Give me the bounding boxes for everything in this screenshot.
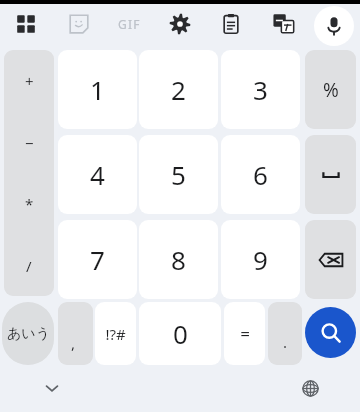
button[interactable]: Translate <box>262 4 306 44</box>
button[interactable]: 6 <box>221 135 300 214</box>
button[interactable]: 4 <box>58 135 137 214</box>
button[interactable]: Backspace <box>305 220 356 299</box>
staticText: 2 <box>171 72 186 107</box>
button[interactable]: !?# <box>95 302 136 365</box>
button[interactable]: Voice input <box>314 6 354 46</box>
staticText: 9 <box>253 242 268 277</box>
button[interactable]: , <box>58 302 93 365</box>
staticText: 8 <box>171 242 186 277</box>
button[interactable]: 0 <box>139 302 221 365</box>
button[interactable]: あいう <box>2 302 54 365</box>
button[interactable]: . <box>268 302 302 365</box>
button[interactable]: Space <box>305 135 356 214</box>
button[interactable]: Hide keyboard <box>32 368 72 408</box>
button[interactable]: * <box>4 173 54 235</box>
button[interactable]: 3 <box>221 50 300 129</box>
button[interactable]: % <box>305 50 356 129</box>
button[interactable]: Apps <box>4 4 48 44</box>
staticText: , <box>71 333 76 353</box>
button[interactable]: Stickers <box>57 4 101 44</box>
button[interactable]: 9 <box>221 220 300 299</box>
staticText: . <box>283 332 288 352</box>
staticText: 3 <box>253 72 268 107</box>
button[interactable]: 1 <box>58 50 137 129</box>
staticText: 4 <box>90 157 105 192</box>
button[interactable]: Change language <box>290 368 330 408</box>
button[interactable]: + <box>4 50 54 112</box>
button[interactable]: 8 <box>139 220 218 299</box>
button[interactable]: GIF <box>107 4 151 44</box>
staticText: GIF <box>118 16 141 32</box>
button[interactable]: 7 <box>58 220 137 299</box>
staticText: % <box>323 77 339 103</box>
button[interactable]: − <box>4 112 54 174</box>
button[interactable]: Search <box>305 307 356 358</box>
staticText: !?# <box>105 324 126 344</box>
staticText: 1 <box>90 72 105 107</box>
staticText: * <box>25 194 34 214</box>
staticText: 6 <box>253 157 268 192</box>
button[interactable]: 2 <box>139 50 218 129</box>
staticText: 0 <box>173 316 188 351</box>
button[interactable]: / <box>4 235 54 296</box>
staticText: 5 <box>171 157 186 192</box>
staticText: あいう <box>7 325 50 343</box>
staticText: + <box>25 71 34 91</box>
staticText: − <box>25 133 34 153</box>
staticText: = <box>240 322 250 345</box>
button[interactable]: Settings <box>158 4 202 44</box>
button[interactable]: 5 <box>139 135 218 214</box>
staticText: / <box>26 256 32 276</box>
button[interactable]: Clipboard <box>209 4 253 44</box>
staticText: 7 <box>90 242 105 277</box>
button[interactable]: = <box>224 302 265 365</box>
